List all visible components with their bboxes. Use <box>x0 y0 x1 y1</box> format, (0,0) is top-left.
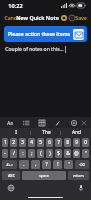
button[interactable]: Markup <box>54 119 62 127</box>
staticText: ( <box>40 150 42 157</box>
staticText: 1 <box>4 139 7 146</box>
staticText: - <box>4 150 6 157</box>
button[interactable]: And <box>61 128 91 137</box>
staticText: ! <box>57 161 59 168</box>
button[interactable]: . <box>19 160 29 169</box>
button[interactable]: Checklist <box>22 119 30 127</box>
button[interactable]: 8 <box>64 138 71 147</box>
button[interactable]: Please action these items <box>4 26 87 42</box>
staticText: Cancel <box>4 14 21 21</box>
button[interactable]: #+= <box>2 160 17 169</box>
staticText: " <box>85 150 87 157</box>
button[interactable]: More options <box>69 15 75 21</box>
button[interactable]: $ <box>55 149 62 158</box>
button[interactable]: 6 <box>46 138 53 147</box>
button[interactable]: Dictate <box>77 184 84 191</box>
button[interactable]: 4 <box>28 138 35 147</box>
button[interactable]: Cancel <box>0 12 25 23</box>
button[interactable]: ; <box>28 149 35 158</box>
button[interactable]: ) <box>46 149 53 158</box>
staticText: 6 <box>48 139 51 146</box>
staticText: ) <box>49 150 51 157</box>
button[interactable]: ? <box>42 160 51 169</box>
staticText: : <box>22 150 24 157</box>
staticText: ? <box>45 161 48 168</box>
staticText: Save <box>75 14 87 21</box>
button[interactable]: @ <box>73 149 80 158</box>
button[interactable]: 9 <box>73 138 80 147</box>
staticText: 2 <box>12 139 15 146</box>
staticText: , <box>35 161 37 168</box>
staticText: . <box>23 161 25 168</box>
staticText: & <box>66 150 70 157</box>
button[interactable]: The <box>31 128 61 137</box>
button[interactable]: Close toolbar <box>80 119 87 126</box>
button[interactable]: 5 <box>37 138 44 147</box>
staticText: I <box>15 129 17 136</box>
button[interactable]: / <box>10 149 17 158</box>
button[interactable]: : <box>19 149 26 158</box>
staticText: 4 <box>30 139 33 146</box>
staticText: New Quick Note <box>16 14 59 21</box>
button[interactable]: Backspace <box>75 160 89 169</box>
button[interactable]: Change keyboard <box>7 184 14 191</box>
button[interactable]: 3 <box>19 138 26 147</box>
staticText: space <box>39 173 49 178</box>
button[interactable]: , <box>31 160 40 169</box>
button[interactable]: return <box>68 171 89 180</box>
staticText: $ <box>57 150 60 157</box>
button[interactable]: space <box>22 171 66 180</box>
staticText: Please action these items <box>8 31 70 38</box>
staticText: ' <box>68 161 70 168</box>
button[interactable]: " <box>82 149 89 158</box>
staticText: Aa <box>7 120 13 126</box>
staticText: Couple of notes on this... <box>5 46 64 53</box>
staticText: / <box>13 150 15 157</box>
staticText: ; <box>31 150 33 157</box>
button[interactable]: 7 <box>55 138 62 147</box>
staticText: 10:22 <box>8 2 23 10</box>
staticText: @ <box>74 150 79 157</box>
button[interactable]: 1 <box>2 138 8 147</box>
button[interactable]: & <box>64 149 71 158</box>
staticText: return <box>73 173 84 178</box>
staticText: 0 <box>84 139 87 146</box>
button[interactable]: ( <box>37 149 44 158</box>
staticText: 5 <box>39 139 42 146</box>
staticText: ⌫ <box>79 163 85 167</box>
button[interactable]: - <box>2 149 8 158</box>
staticText: 3 <box>21 139 24 146</box>
staticText: #+= <box>6 162 13 167</box>
button[interactable]: Attach <box>70 119 78 127</box>
staticText: And <box>72 129 81 136</box>
button[interactable]: Table <box>38 119 46 127</box>
staticText: 7 <box>57 139 60 146</box>
staticText: The <box>42 129 51 136</box>
button[interactable]: 0 <box>82 138 89 147</box>
button[interactable]: Note marker <box>61 15 67 21</box>
staticText: 8 <box>66 139 69 146</box>
button[interactable]: ABC <box>2 171 20 180</box>
button[interactable]: I <box>0 128 31 137</box>
staticText: ABC <box>8 173 15 178</box>
other: Mail attachment <box>73 29 84 40</box>
button[interactable]: 2 <box>10 138 17 147</box>
button[interactable]: Text format <box>6 119 14 127</box>
button[interactable]: ' <box>64 160 73 169</box>
staticText: 9 <box>75 139 78 146</box>
button[interactable]: Save <box>71 12 91 23</box>
button[interactable]: ! <box>53 160 62 169</box>
